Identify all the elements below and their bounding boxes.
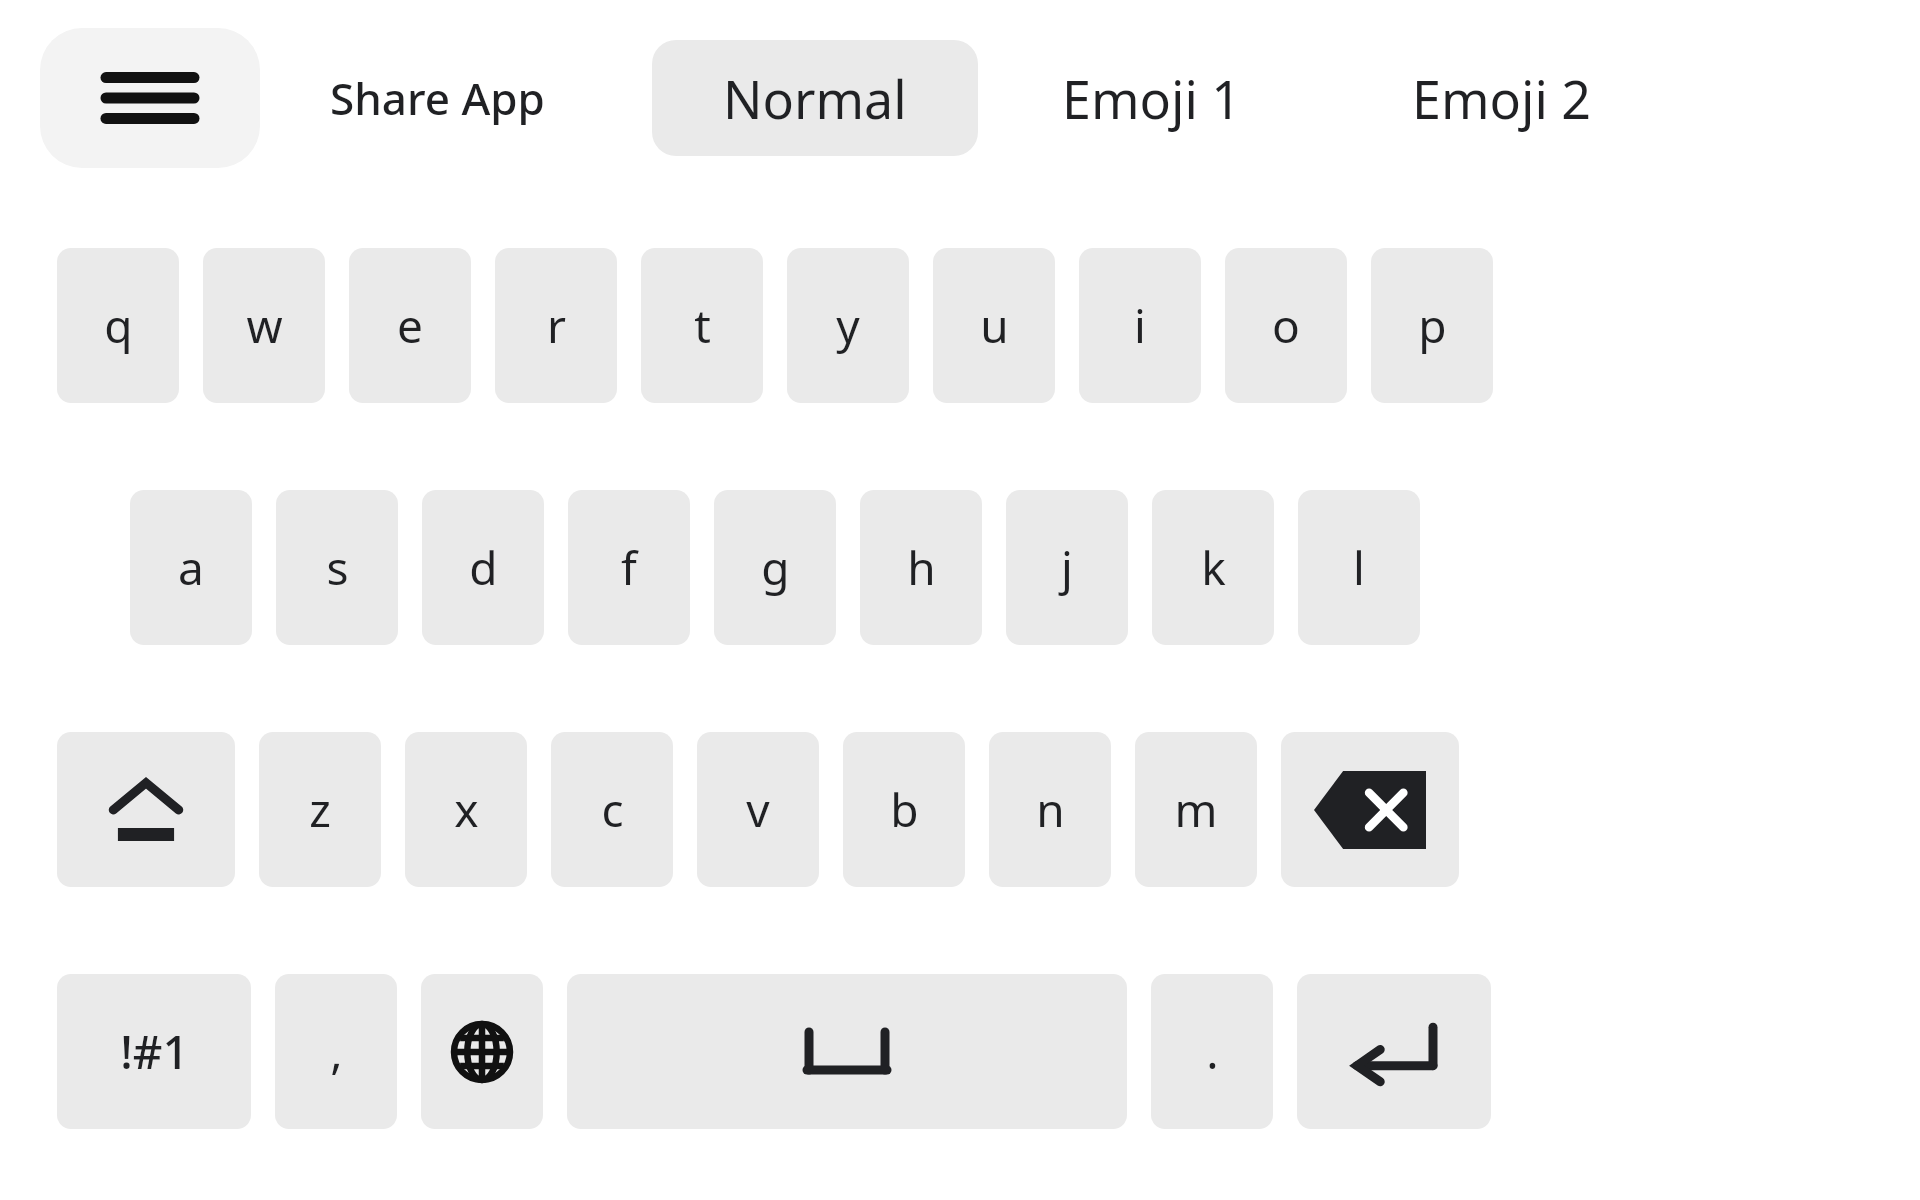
button[interactable]: Emoji 1 xyxy=(1062,48,1242,148)
staticText: v xyxy=(746,778,770,841)
button[interactable]: Change language xyxy=(421,974,543,1129)
button[interactable]: Shift xyxy=(57,732,235,887)
button[interactable]: p xyxy=(1371,248,1493,403)
button[interactable]: Normal xyxy=(652,40,978,156)
button[interactable]: c xyxy=(551,732,673,887)
staticText: g xyxy=(761,536,790,599)
staticText: . xyxy=(1206,1020,1219,1083)
button[interactable]: y xyxy=(787,248,909,403)
button[interactable]: n xyxy=(989,732,1111,887)
staticText: a xyxy=(178,536,204,599)
button[interactable]: t xyxy=(641,248,763,403)
button[interactable]: w xyxy=(203,248,325,403)
staticText: x xyxy=(454,778,479,841)
staticText: r xyxy=(547,294,566,357)
staticText: e xyxy=(397,294,423,357)
button[interactable]: g xyxy=(714,490,836,645)
button[interactable]: Menu xyxy=(40,28,260,168)
button[interactable]: e xyxy=(349,248,471,403)
staticText: !#1 xyxy=(120,1020,189,1083)
staticText: j xyxy=(1061,536,1073,599)
button[interactable]: f xyxy=(568,490,690,645)
staticText: Normal xyxy=(723,63,907,134)
button[interactable]: Share App xyxy=(330,50,545,146)
staticText: y xyxy=(836,294,860,357)
staticText: z xyxy=(309,778,331,841)
button[interactable]: Enter xyxy=(1297,974,1491,1129)
button[interactable]: !#1 xyxy=(57,974,251,1129)
button[interactable]: . xyxy=(1151,974,1273,1129)
staticText: Share App xyxy=(330,68,545,128)
button[interactable]: k xyxy=(1152,490,1274,645)
button[interactable]: o xyxy=(1225,248,1347,403)
button[interactable]: d xyxy=(422,490,544,645)
staticText: , xyxy=(330,1020,343,1083)
staticText: Emoji 1 xyxy=(1062,63,1242,134)
staticText: i xyxy=(1134,294,1146,357)
button[interactable]: l xyxy=(1298,490,1420,645)
staticText: Emoji 2 xyxy=(1412,63,1592,134)
staticText: c xyxy=(601,778,624,841)
button[interactable]: q xyxy=(57,248,179,403)
button[interactable]: v xyxy=(697,732,819,887)
button[interactable]: a xyxy=(130,490,252,645)
staticText: s xyxy=(326,536,349,599)
staticText: q xyxy=(104,294,133,357)
button[interactable]: Space xyxy=(567,974,1127,1129)
button[interactable]: u xyxy=(933,248,1055,403)
button[interactable]: b xyxy=(843,732,965,887)
button[interactable]: h xyxy=(860,490,982,645)
staticText: u xyxy=(980,294,1009,357)
staticText: h xyxy=(907,536,936,599)
button[interactable]: i xyxy=(1079,248,1201,403)
button[interactable]: z xyxy=(259,732,381,887)
staticText: o xyxy=(1272,294,1300,357)
staticText: d xyxy=(469,536,498,599)
staticText: m xyxy=(1174,778,1218,841)
staticText: k xyxy=(1201,536,1226,599)
staticText: f xyxy=(621,536,637,599)
button[interactable]: s xyxy=(276,490,398,645)
button[interactable]: , xyxy=(275,974,397,1129)
staticText: b xyxy=(890,778,919,841)
button[interactable]: Backspace xyxy=(1281,732,1459,887)
staticText: n xyxy=(1036,778,1065,841)
staticText: p xyxy=(1418,294,1447,357)
button[interactable]: r xyxy=(495,248,617,403)
staticText: t xyxy=(694,294,711,357)
button[interactable]: m xyxy=(1135,732,1257,887)
button[interactable]: j xyxy=(1006,490,1128,645)
staticText: l xyxy=(1353,536,1365,599)
staticText: w xyxy=(246,294,283,357)
button[interactable]: x xyxy=(405,732,527,887)
button[interactable]: Emoji 2 xyxy=(1412,48,1592,148)
